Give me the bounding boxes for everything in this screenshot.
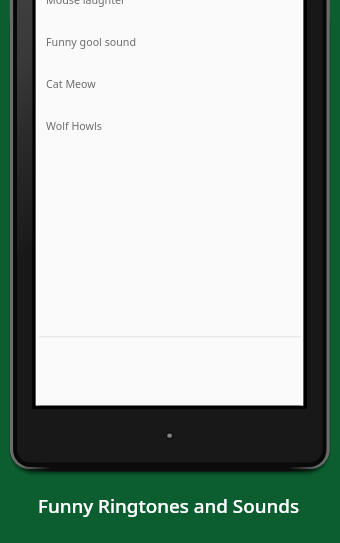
button[interactable]: Mouse laughter <box>36 0 303 21</box>
button[interactable]: Cat Meow <box>36 63 303 105</box>
staticText: Mouse laughter <box>46 0 126 8</box>
button[interactable]: Funny gool sound <box>36 21 303 63</box>
staticText: Wolf Howls <box>46 119 102 134</box>
staticText: Funny gool sound <box>46 35 137 50</box>
staticText: Funny Ringtones and Sounds <box>38 493 300 519</box>
staticText: Cat Meow <box>46 77 96 92</box>
button[interactable]: Wolf Howls <box>36 105 303 147</box>
